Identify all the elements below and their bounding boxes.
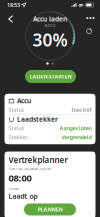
- staticText: Accu: [17, 96, 31, 105]
- staticText: PROFIEL: [8, 187, 18, 191]
- button[interactable]: LADEN STARTEN: [25, 70, 76, 83]
- button[interactable]: Refresh: [84, 26, 95, 37]
- staticText: Status: [8, 106, 24, 113]
- staticText: LADEN STARTEN: [29, 73, 71, 80]
- staticText: Vergrendeld: [61, 134, 91, 141]
- staticText: Laadt op: [8, 192, 37, 200]
- staticText: Accu laden: [33, 15, 67, 23]
- staticText: VOERTUIG ZAL GEREED ZIJN OM: [8, 167, 50, 171]
- staticText: Status: [8, 125, 24, 132]
- staticText: 30%: [32, 28, 67, 51]
- staticText: Laadstekker: [17, 115, 58, 124]
- button[interactable]: Back: [4, 12, 18, 26]
- staticText: Stekker: [8, 134, 27, 141]
- staticText: PLANNEN: [37, 206, 62, 213]
- staticText: 18:53: [7, 1, 20, 9]
- button[interactable]: More options: [83, 11, 97, 25]
- staticText: ACCU: [44, 23, 55, 28]
- staticText: 08:00: [8, 172, 31, 184]
- staticText: Inactief: [71, 106, 91, 113]
- staticText: ⋯: [85, 13, 94, 23]
- staticText: Vertrekplanner: [8, 154, 67, 165]
- button[interactable]: PLANNEN: [24, 203, 76, 215]
- staticText: Aangesloten: [59, 125, 91, 132]
